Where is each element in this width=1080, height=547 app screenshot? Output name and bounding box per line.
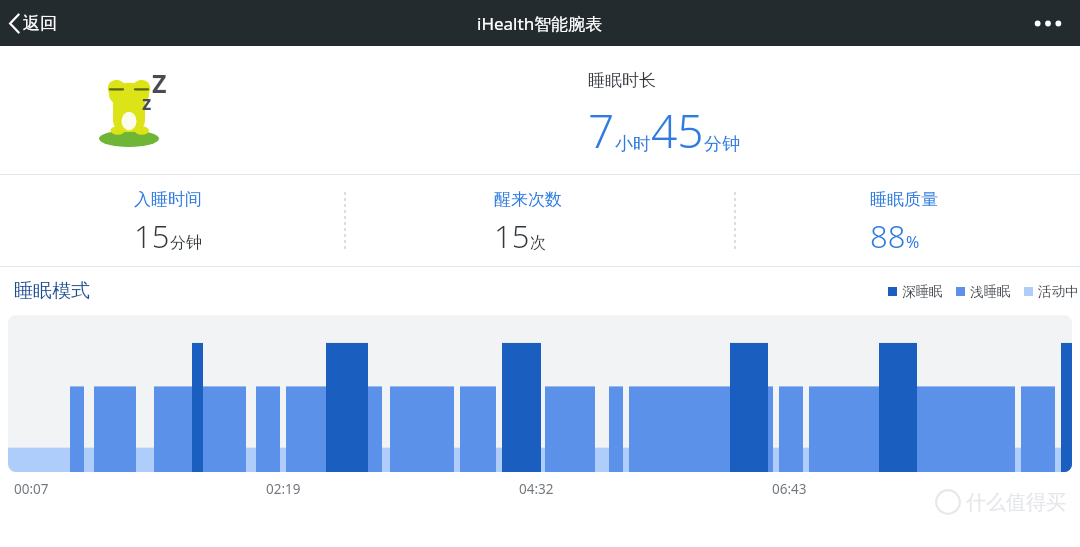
staticText: 浅睡眠	[970, 283, 1011, 300]
staticText: 入睡时间	[134, 189, 202, 210]
staticText: 7	[588, 99, 615, 162]
staticText: 活动中	[1038, 283, 1079, 300]
staticText: 04:32	[519, 480, 554, 498]
staticText: 小时	[615, 133, 651, 156]
staticText: z	[142, 90, 152, 116]
staticText: 睡眠模式	[14, 279, 90, 303]
staticText: 02:19	[266, 480, 301, 498]
staticText: 88	[870, 215, 906, 257]
staticText: 15	[494, 215, 530, 257]
staticText: 06:43	[772, 480, 807, 498]
staticText: 分钟	[704, 133, 740, 156]
staticText: 45	[651, 99, 704, 162]
staticText: 返回	[23, 13, 57, 34]
staticText: 深睡眠	[902, 283, 943, 300]
staticText: 分钟	[170, 233, 202, 253]
staticText: iHealth智能腕表	[477, 12, 603, 35]
staticText: 睡眠时长	[588, 70, 656, 91]
staticText: 睡眠质量	[870, 189, 938, 210]
staticText: 00:07	[14, 480, 49, 498]
staticText: 什么值得买	[966, 490, 1066, 515]
staticText: 次	[530, 233, 546, 253]
staticText: Z	[152, 66, 167, 100]
button[interactable]: 返回	[0, 0, 73, 46]
button[interactable]: 醒来次数	[492, 187, 564, 259]
button[interactable]: 入睡时间	[132, 187, 204, 259]
staticText: 醒来次数	[494, 189, 562, 210]
button[interactable]: 睡眠质量	[868, 187, 940, 259]
button[interactable]: More options	[1016, 0, 1080, 46]
staticText: %	[906, 231, 920, 253]
staticText: 15	[134, 215, 170, 257]
